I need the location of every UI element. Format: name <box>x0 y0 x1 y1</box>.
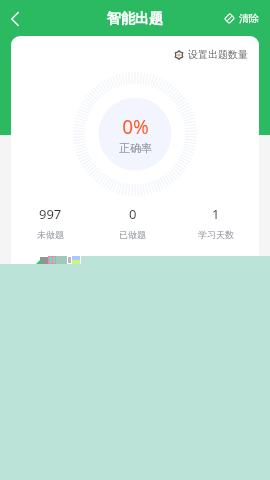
button[interactable]: 1 <box>174 205 257 240</box>
other: Clear <box>224 13 235 24</box>
staticText: 清除 <box>239 12 259 25</box>
staticText: 正确率 <box>119 141 152 155</box>
button[interactable]: 0 <box>91 205 174 240</box>
staticText: 0 <box>129 205 137 223</box>
staticText: 学习天数 <box>198 229 234 240</box>
staticText: 997 <box>39 205 62 223</box>
button[interactable]: Back <box>0 3 32 35</box>
staticText: 未做题 <box>37 229 64 240</box>
staticText: 1 <box>212 205 220 223</box>
button[interactable]: Clear <box>224 12 259 25</box>
staticText: 智能出题 <box>107 10 163 28</box>
button[interactable]: 997 <box>11 205 91 240</box>
button[interactable]: 设置出题数量 <box>174 48 248 61</box>
staticText: 设置出题数量 <box>188 48 248 61</box>
staticText: 0% <box>122 114 149 140</box>
staticText: 已做题 <box>119 229 146 240</box>
